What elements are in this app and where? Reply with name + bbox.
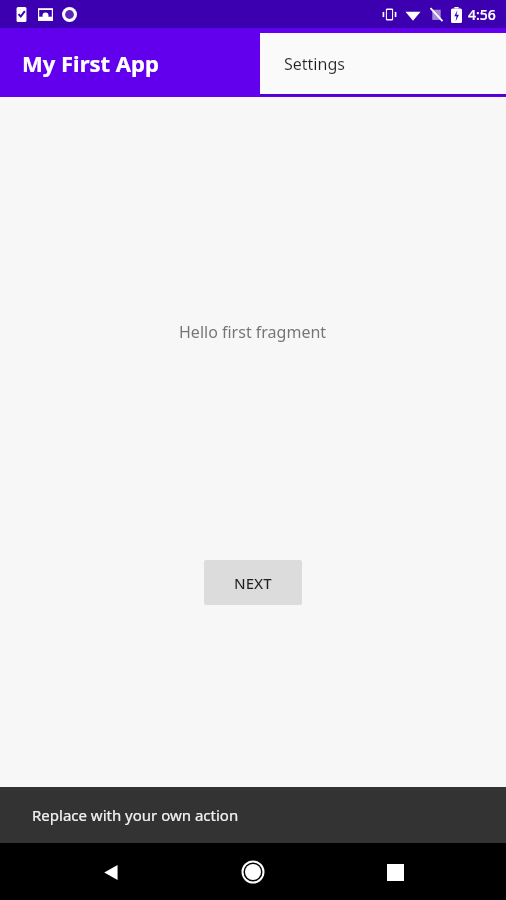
button[interactable]: Back: [90, 851, 132, 893]
button[interactable]: Settings: [260, 33, 506, 94]
button[interactable]: NEXT: [204, 560, 302, 605]
staticText: 4:56: [468, 5, 496, 24]
staticText: NEXT: [234, 573, 272, 593]
staticText: Replace with your own action: [32, 805, 239, 825]
button[interactable]: Replace with your own action: [0, 787, 506, 843]
staticText: Settings: [284, 53, 345, 75]
button[interactable]: Recent apps: [374, 851, 416, 893]
staticText: My First App: [22, 48, 159, 78]
button[interactable]: Send email: [421, 793, 485, 857]
staticText: Hello first fragment: [179, 321, 327, 343]
button[interactable]: Home: [231, 850, 275, 894]
